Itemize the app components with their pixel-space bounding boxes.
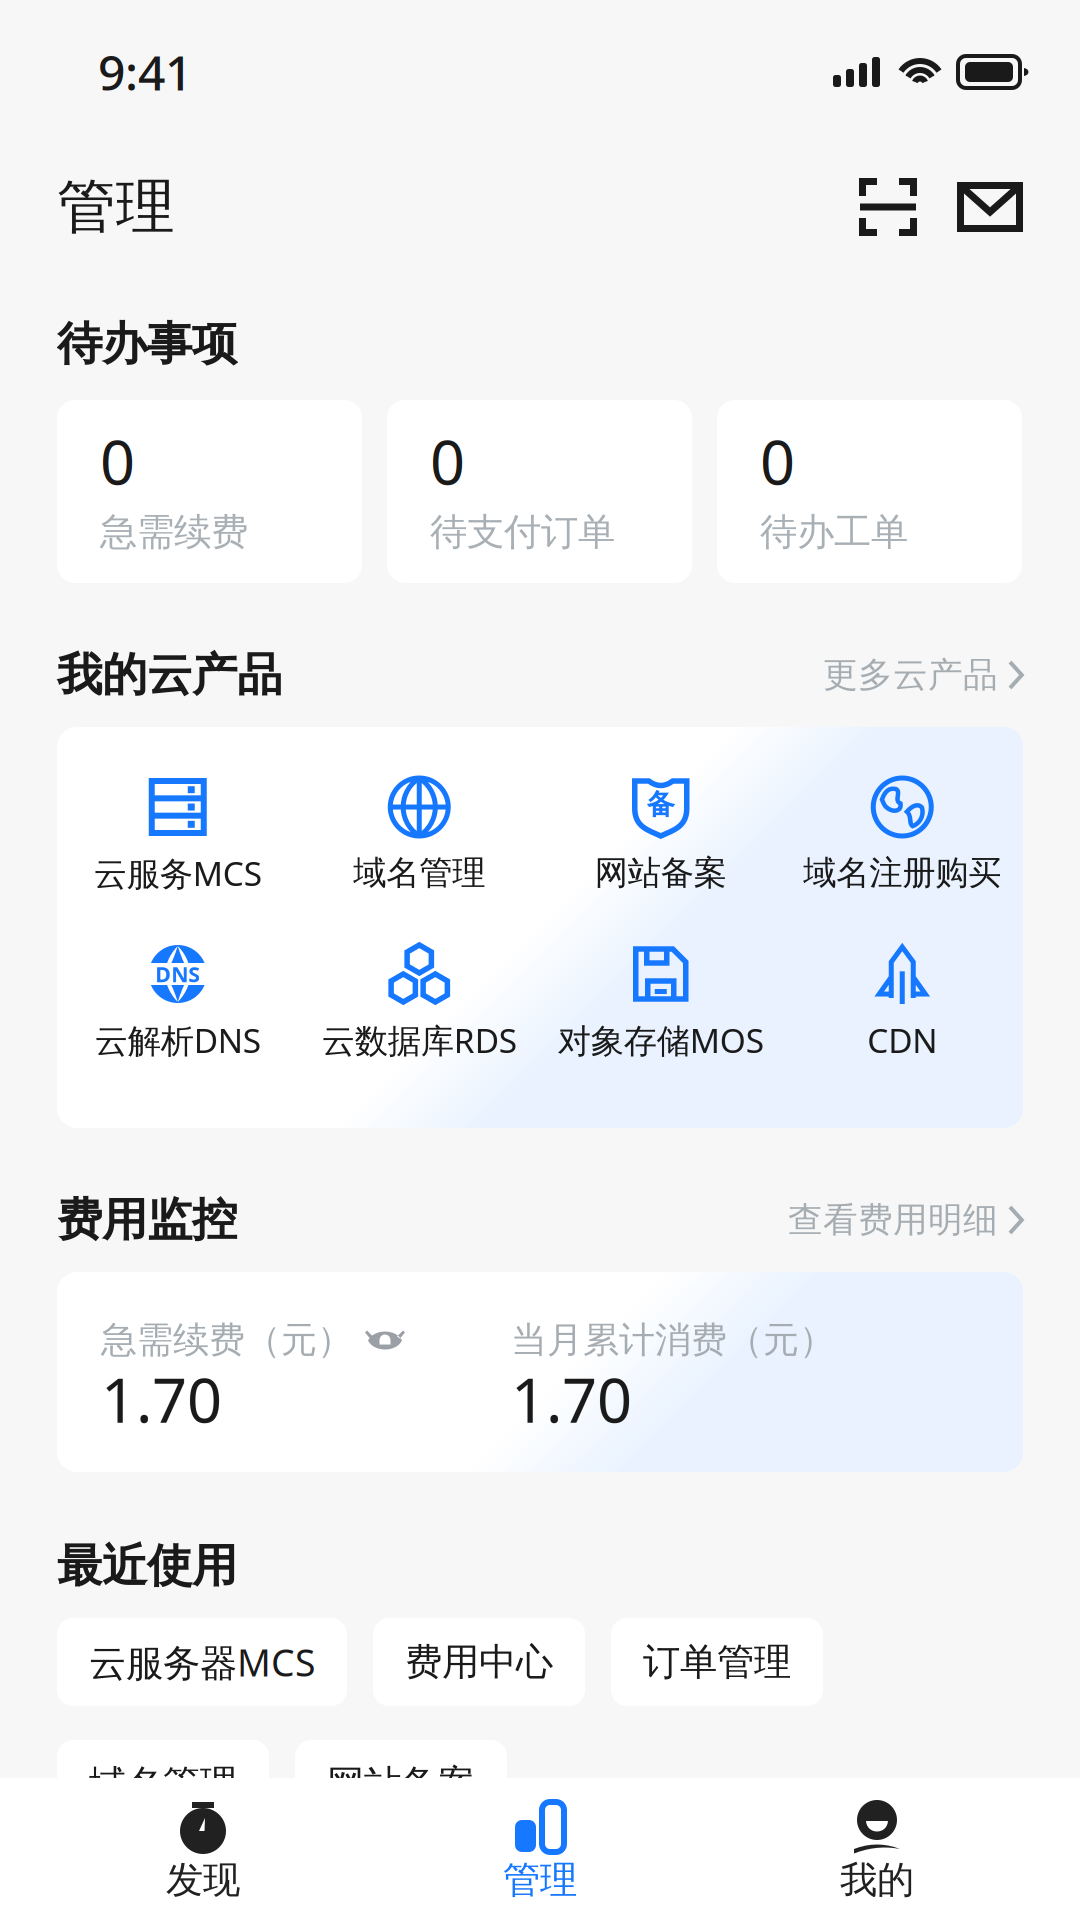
staticText: 订单管理: [643, 1639, 791, 1685]
button[interactable]: 发现: [99, 1778, 307, 1920]
button[interactable]: 费用中心: [373, 1618, 585, 1706]
staticText: 1.70: [101, 1358, 222, 1440]
button[interactable]: 域名管理: [57, 1740, 269, 1828]
button[interactable]: 0: [717, 400, 1022, 583]
staticText: 域名管理: [353, 852, 485, 893]
button[interactable]: 0: [387, 400, 692, 583]
staticText: DNS: [155, 960, 200, 988]
staticText: 最近使用: [57, 1538, 237, 1594]
staticText: 对象存储MOS: [558, 1018, 764, 1062]
staticText: 云服务器MCS: [89, 1637, 315, 1687]
staticText: 云服务MCS: [94, 851, 262, 895]
staticText: 1.70: [511, 1358, 632, 1440]
staticText: 网站备案: [327, 1761, 475, 1807]
button[interactable]: 云服务MCS: [57, 774, 298, 890]
staticText: 0: [100, 420, 135, 502]
staticText: 管理: [503, 1857, 577, 1903]
staticText: 急需续费（元）: [101, 1318, 353, 1362]
staticText: 9:41: [98, 40, 192, 104]
button[interactable]: 扫一扫: [859, 178, 917, 236]
staticText: CDN: [867, 1018, 937, 1062]
staticText: 我的云产品: [57, 647, 282, 703]
button[interactable]: 查看费用明细: [788, 1199, 1023, 1241]
staticText: 云数据库RDS: [322, 1018, 517, 1062]
staticText: 更多云产品: [823, 654, 998, 696]
staticText: 费用监控: [57, 1192, 237, 1248]
staticText: 待办工单: [760, 509, 908, 555]
staticText: 当月累计消费（元）: [511, 1318, 835, 1362]
staticText: 查看费用明细: [788, 1199, 998, 1241]
staticText: 0: [430, 420, 465, 502]
button[interactable]: 0: [57, 400, 362, 583]
staticText: 云解析DNS: [95, 1018, 261, 1062]
button[interactable]: 云数据库RDS: [298, 941, 540, 1057]
staticText: 我的: [840, 1857, 914, 1903]
button[interactable]: 域名管理: [298, 774, 540, 890]
button[interactable]: 网站备案: [295, 1740, 507, 1828]
staticText: 急需续费: [100, 509, 248, 555]
staticText: 备: [647, 787, 675, 822]
button[interactable]: 管理: [436, 1778, 644, 1920]
button[interactable]: 备: [540, 774, 781, 890]
staticText: 0: [760, 420, 795, 502]
button[interactable]: 更多云产品: [823, 654, 1023, 696]
button[interactable]: 对象存储MOS: [540, 941, 781, 1057]
button[interactable]: 云服务器MCS: [57, 1618, 347, 1706]
staticText: 域名注册购买: [803, 852, 1001, 893]
staticText: 发现: [166, 1857, 240, 1903]
button[interactable]: 域名注册购买: [781, 774, 1023, 890]
button[interactable]: 订单管理: [611, 1618, 823, 1706]
staticText: 待办事项: [57, 316, 237, 372]
staticText: 管理: [57, 171, 175, 243]
button[interactable]: 我的: [773, 1778, 981, 1920]
button[interactable]: CDN: [781, 941, 1023, 1057]
button[interactable]: 消息: [957, 182, 1023, 232]
staticText: 域名管理: [89, 1761, 237, 1807]
button[interactable]: DNS: [57, 941, 298, 1057]
staticText: 费用中心: [405, 1639, 553, 1685]
staticText: 待支付订单: [430, 509, 615, 555]
staticText: 网站备案: [595, 852, 727, 893]
